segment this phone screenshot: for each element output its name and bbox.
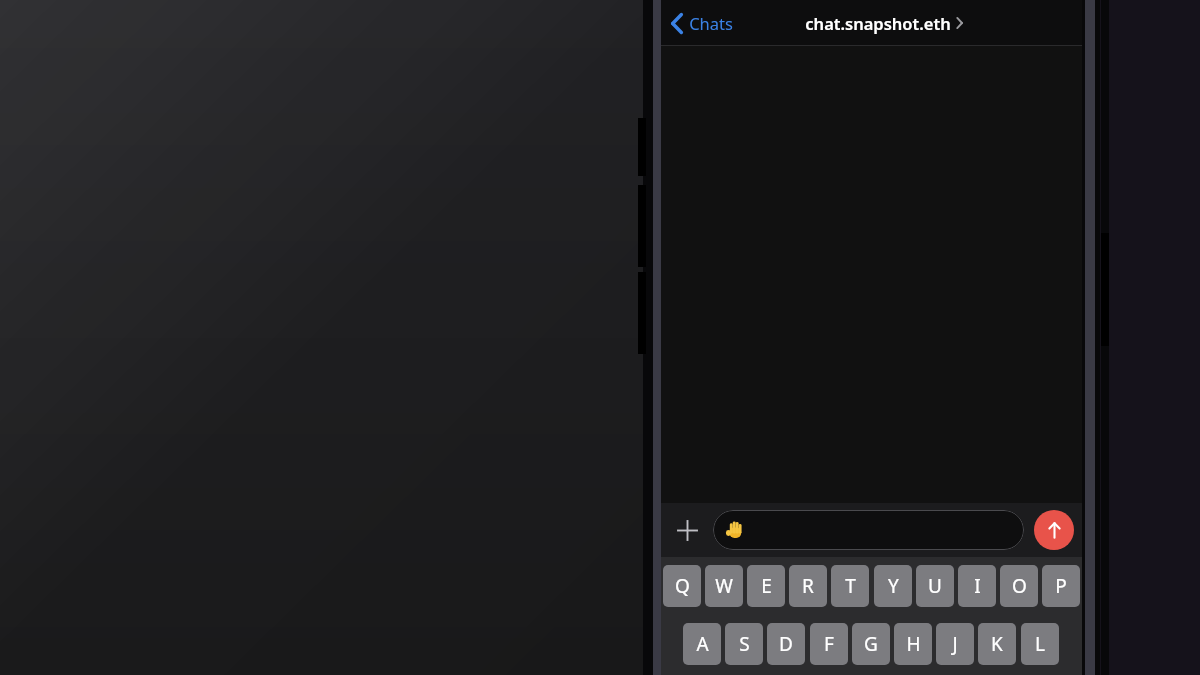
staticText: I — [974, 573, 981, 599]
staticText: U — [928, 573, 942, 599]
staticText: A — [696, 631, 709, 657]
staticText: H — [906, 631, 921, 657]
staticText: G — [864, 631, 878, 657]
staticText: O — [1012, 573, 1027, 599]
button[interactable]: H — [894, 623, 932, 665]
staticText: S — [739, 631, 750, 657]
staticText: Q — [675, 573, 690, 599]
staticText: P — [1055, 573, 1067, 599]
button[interactable]: A — [683, 623, 721, 665]
button[interactable]: P — [1042, 565, 1080, 607]
button[interactable]: K — [978, 623, 1016, 665]
button[interactable]: G — [852, 623, 890, 665]
button[interactable]: R — [789, 565, 827, 607]
button[interactable]: F — [810, 623, 848, 665]
staticText: W — [715, 573, 733, 599]
staticText: F — [824, 631, 834, 657]
button[interactable]: W — [705, 565, 743, 607]
staticText: T — [845, 573, 856, 599]
staticText: D — [779, 631, 793, 657]
button[interactable]: Q — [663, 565, 701, 607]
button[interactable]: Add attachment — [667, 510, 707, 550]
staticText: Chats — [689, 12, 733, 34]
button[interactable]: S — [725, 623, 763, 665]
button[interactable] — [713, 510, 1024, 550]
staticText: R — [802, 573, 814, 599]
button[interactable]: I — [958, 565, 996, 607]
staticText: Y — [888, 573, 899, 599]
button[interactable]: Y — [874, 565, 912, 607]
staticText: J — [952, 631, 958, 657]
button[interactable]: L — [1021, 623, 1059, 665]
button[interactable]: chat.snapshot.eth — [799, 8, 969, 38]
staticText: chat.snapshot.eth — [805, 12, 951, 34]
button[interactable]: D — [767, 623, 805, 665]
button[interactable]: Send — [1034, 510, 1074, 550]
staticText: E — [761, 573, 772, 599]
button[interactable]: O — [1000, 565, 1038, 607]
staticText: K — [991, 631, 1003, 657]
button[interactable]: Chats — [661, 0, 743, 46]
button[interactable]: U — [916, 565, 954, 607]
button[interactable]: E — [747, 565, 785, 607]
staticText: L — [1035, 631, 1045, 657]
button[interactable]: T — [831, 565, 869, 607]
button[interactable]: J — [936, 623, 974, 665]
